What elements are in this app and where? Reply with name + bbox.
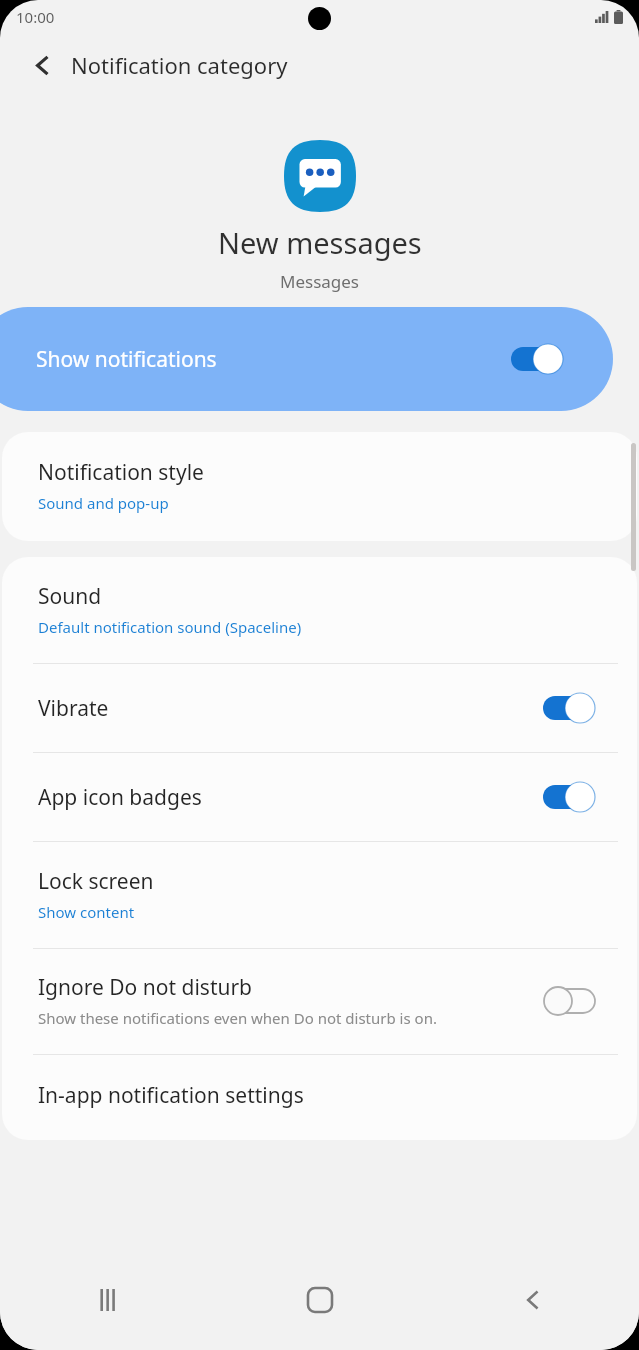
button[interactable]: Ignore Do not disturb <box>2 949 637 1054</box>
button[interactable]: In-app notification settings <box>2 1055 637 1140</box>
staticText: Sound <box>38 582 102 611</box>
staticText: Lock screen <box>38 867 154 896</box>
staticText: 10:00 <box>16 7 55 27</box>
staticText: Sound and pop-up <box>38 493 169 513</box>
staticText: Ignore Do not disturb <box>38 973 253 1002</box>
button[interactable]: Home <box>282 1262 358 1338</box>
staticText: New messages <box>218 223 422 262</box>
button[interactable]: App icon badges <box>2 753 637 841</box>
button[interactable]: Vibrate <box>2 664 637 752</box>
button[interactable]: Back <box>495 1262 571 1338</box>
button[interactable]: Show notifications <box>0 307 613 411</box>
staticText: Show these notifications even when Do no… <box>38 1008 437 1028</box>
staticText: Default notification sound (Spaceline) <box>38 617 302 637</box>
button[interactable]: Recents <box>69 1262 145 1338</box>
staticText: Vibrate <box>38 694 543 723</box>
button[interactable]: Notification style <box>2 432 637 541</box>
staticText: Show notifications <box>36 345 217 374</box>
button[interactable]: Back <box>22 45 62 85</box>
staticText: Notification style <box>38 458 204 487</box>
staticText: Notification category <box>71 50 288 80</box>
staticText: In-app notification settings <box>38 1081 304 1110</box>
staticText: Show content <box>38 902 135 922</box>
staticText: Messages <box>280 270 360 293</box>
staticText: App icon badges <box>38 783 543 812</box>
button[interactable]: Lock screen <box>2 842 637 948</box>
button[interactable]: Sound <box>2 557 637 663</box>
